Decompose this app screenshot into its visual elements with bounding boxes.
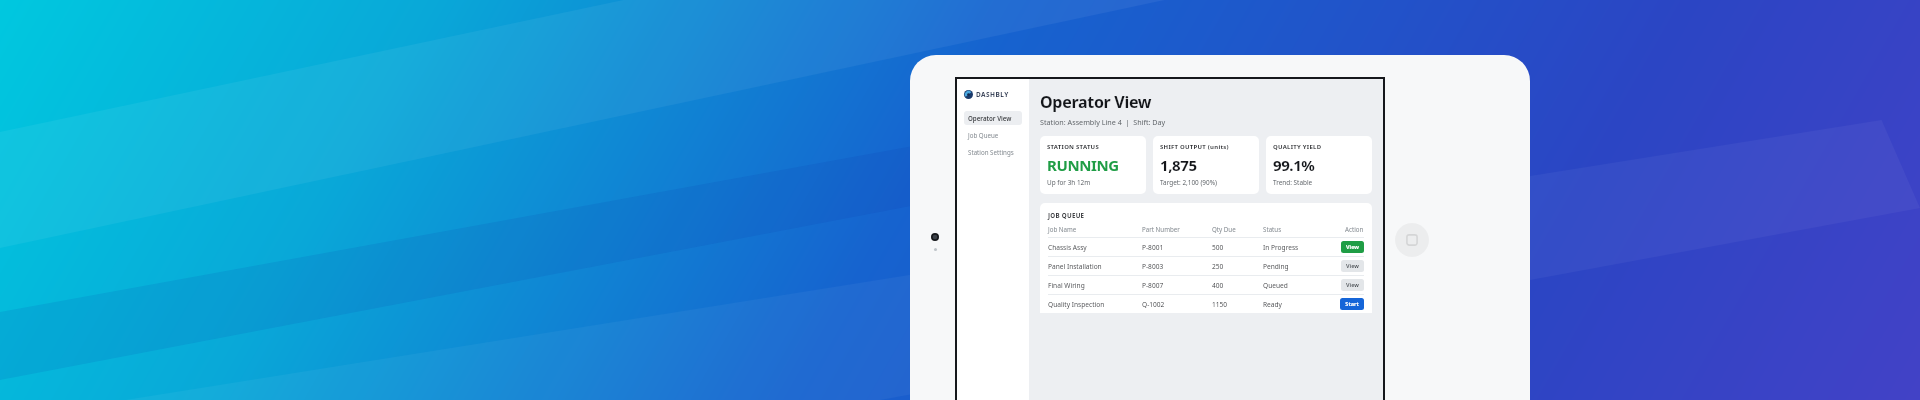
staticText: Status	[1263, 225, 1326, 233]
button[interactable]: Panel Installation	[1048, 256, 1364, 275]
staticText: Q-1002	[1142, 300, 1212, 309]
button[interactable]: QUALITY YIELD	[1266, 136, 1372, 194]
staticText: 250	[1212, 262, 1263, 271]
staticText: Station: Assembly Line 4 | Shift: Day	[1040, 117, 1166, 127]
staticText: 1,875	[1160, 155, 1197, 175]
staticText: View	[1346, 243, 1359, 251]
staticText: Start	[1345, 300, 1359, 308]
staticText: Operator View	[1040, 91, 1152, 113]
staticText: Queued	[1263, 281, 1326, 290]
staticText: QUALITY YIELD	[1273, 143, 1322, 151]
staticText: 1150	[1212, 300, 1263, 309]
staticText: Operator View	[968, 114, 1012, 122]
button[interactable]: Final Wiring	[1048, 275, 1364, 294]
staticText: P-8001	[1142, 243, 1212, 252]
staticText: In Progress	[1263, 243, 1326, 252]
button[interactable]: Chassis Assy	[1048, 237, 1364, 256]
staticText: Trend: Stable	[1273, 178, 1313, 187]
staticText: Qty Due	[1212, 225, 1263, 233]
staticText: Final Wiring	[1048, 281, 1142, 290]
staticText: Ready	[1263, 300, 1326, 309]
staticText: Pending	[1263, 262, 1326, 271]
staticText: View	[1346, 281, 1359, 289]
staticText: Station Settings	[968, 148, 1014, 156]
button[interactable]: View	[1341, 241, 1364, 253]
staticText: RUNNING	[1047, 155, 1119, 175]
staticText: Job Queue	[968, 131, 999, 139]
staticText: 99.1%	[1273, 155, 1315, 175]
staticText: Action	[1345, 225, 1364, 233]
staticText: P-8003	[1142, 262, 1212, 271]
button[interactable]: SHIFT OUTPUT (units)	[1153, 136, 1259, 194]
staticText: JOB QUEUE	[1048, 211, 1085, 219]
staticText: Up for 3h 12m	[1047, 178, 1091, 187]
button[interactable]: Start	[1340, 298, 1364, 310]
button[interactable]: View	[1341, 260, 1364, 272]
staticText: Part Number	[1142, 225, 1212, 233]
staticText: Job Name	[1048, 225, 1142, 233]
staticText: Panel Installation	[1048, 262, 1142, 271]
button[interactable]: Station Settings	[964, 145, 1022, 159]
staticText: DASHBLY	[976, 90, 1009, 99]
button[interactable]: Quality Inspection	[1048, 294, 1364, 313]
staticText: 500	[1212, 243, 1263, 252]
staticText: Quality Inspection	[1048, 300, 1142, 309]
staticText: View	[1346, 262, 1359, 270]
staticText: STATION STATUS	[1047, 143, 1099, 151]
button[interactable]: STATION STATUS	[1040, 136, 1146, 194]
staticText: Chassis Assy	[1048, 243, 1142, 252]
button[interactable]: View	[1341, 279, 1364, 291]
staticText: Target: 2,100 (90%)	[1160, 178, 1217, 187]
button[interactable]: Job Queue	[964, 128, 1022, 142]
staticText: SHIFT OUTPUT (units)	[1160, 143, 1229, 151]
staticText: 400	[1212, 281, 1263, 290]
staticText: P-8007	[1142, 281, 1212, 290]
button[interactable]: Operator View	[964, 111, 1022, 125]
